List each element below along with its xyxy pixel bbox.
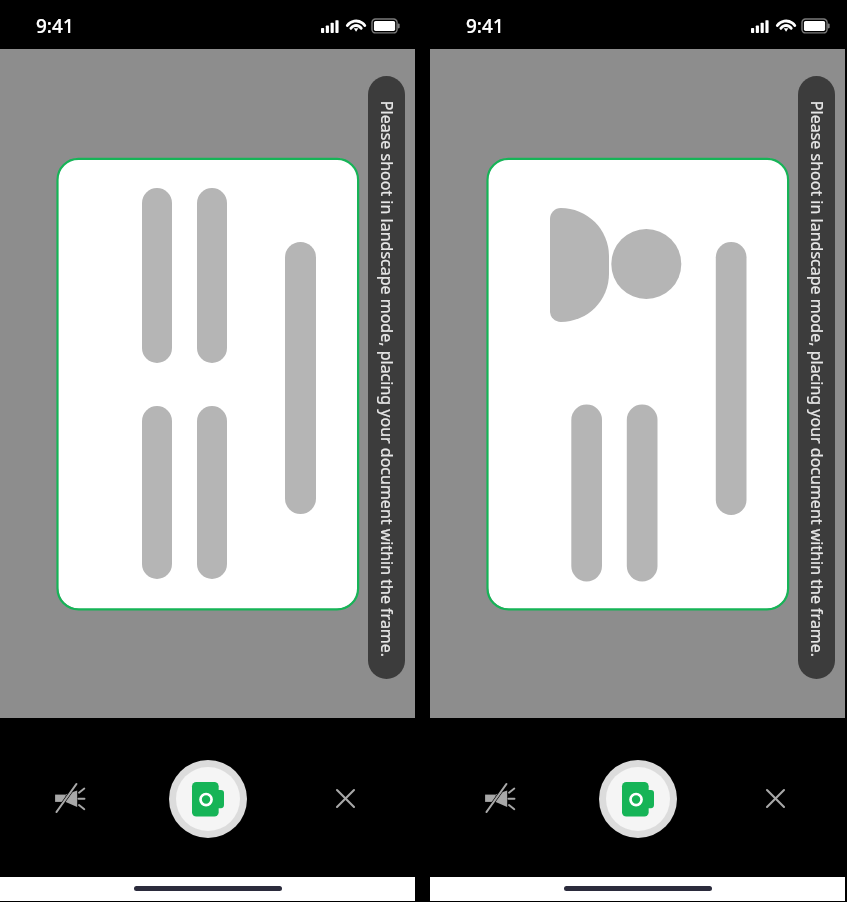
- staticText: 9:41: [466, 13, 504, 39]
- button[interactable]: Camera preview, tap to focus: [430, 49, 845, 718]
- staticText: 9:41: [36, 13, 74, 39]
- button[interactable]: Close: [331, 784, 360, 813]
- button[interactable]: Mute: [52, 780, 89, 817]
- button[interactable]: Close: [761, 784, 790, 813]
- button[interactable]: Camera preview, tap to focus: [0, 49, 415, 718]
- button[interactable]: Capture photo: [169, 760, 247, 838]
- staticText: Please shoot in landscape mode, placing …: [375, 100, 397, 657]
- button[interactable]: Capture photo: [599, 760, 677, 838]
- button[interactable]: Mute: [482, 780, 519, 817]
- staticText: Please shoot in landscape mode, placing …: [805, 100, 827, 657]
